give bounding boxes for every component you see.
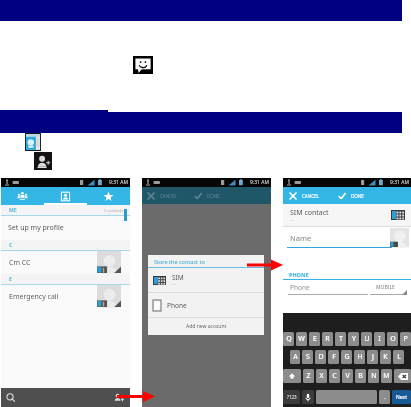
staticText: 9:31 AM bbox=[250, 179, 269, 186]
staticText: ?123 bbox=[287, 394, 297, 400]
button[interactable]: Groups bbox=[1, 187, 44, 205]
button[interactable]: Favorites bbox=[87, 187, 130, 205]
button[interactable]: M bbox=[381, 369, 392, 383]
staticText: 9:31 AM bbox=[109, 179, 128, 186]
button[interactable]: A bbox=[290, 350, 300, 364]
staticText: . bbox=[384, 393, 386, 401]
staticText: D bbox=[318, 352, 324, 362]
button[interactable]: ?123 bbox=[283, 390, 300, 404]
staticText: Set up my profile bbox=[8, 223, 64, 233]
staticText: ME bbox=[9, 207, 17, 214]
button[interactable]: S bbox=[302, 350, 313, 364]
button[interactable]: L bbox=[393, 350, 404, 364]
button[interactable]: J bbox=[367, 350, 378, 364]
button[interactable]: X bbox=[316, 369, 327, 383]
staticText: C bbox=[9, 242, 13, 249]
staticText: Phone bbox=[290, 283, 310, 292]
staticText: SIM contact bbox=[290, 208, 329, 218]
staticText: Next bbox=[396, 394, 407, 401]
staticText: Emergency call bbox=[9, 292, 59, 302]
staticText: E bbox=[9, 276, 12, 283]
button[interactable]: Shift bbox=[283, 369, 301, 383]
staticText: ···· bbox=[290, 218, 295, 223]
staticText: U bbox=[364, 334, 370, 344]
button[interactable]: Cancel bbox=[288, 191, 298, 201]
staticText: P bbox=[403, 334, 408, 344]
button[interactable]: Backspace bbox=[394, 369, 411, 383]
staticText: W bbox=[298, 334, 305, 344]
button[interactable]: Q bbox=[283, 332, 294, 346]
staticText: 9:31 AM bbox=[390, 179, 409, 186]
staticText: ···· bbox=[172, 282, 177, 287]
button[interactable]: Add contact bbox=[113, 392, 125, 404]
button[interactable]: Done bbox=[193, 191, 203, 201]
button[interactable]: Cm CC bbox=[1, 251, 130, 274]
button[interactable]: F bbox=[328, 350, 339, 364]
button[interactable]: Voice input bbox=[302, 390, 314, 404]
button[interactable]: Search bbox=[5, 392, 17, 404]
staticText: Store the contact to bbox=[154, 258, 205, 265]
staticText: I bbox=[378, 334, 381, 344]
button[interactable]: Next bbox=[392, 390, 411, 404]
button[interactable]: Contacts bbox=[44, 187, 87, 205]
button[interactable]: W bbox=[296, 332, 307, 346]
staticText: V bbox=[345, 371, 350, 381]
button[interactable]: D bbox=[315, 350, 326, 364]
staticText: Add new account bbox=[186, 323, 227, 330]
staticText: Z bbox=[306, 371, 311, 381]
staticText: Phone bbox=[167, 301, 187, 310]
staticText: DONE bbox=[207, 193, 220, 199]
staticText: B bbox=[358, 371, 363, 381]
button[interactable]: Phone bbox=[148, 293, 264, 317]
button[interactable]: Space bbox=[316, 390, 377, 404]
button[interactable]: O bbox=[387, 332, 398, 346]
button[interactable]: B bbox=[355, 369, 366, 383]
button[interactable]: Emergency call bbox=[1, 285, 130, 308]
button[interactable]: K bbox=[380, 350, 391, 364]
button[interactable]: E bbox=[309, 332, 320, 346]
staticText: 2 contacts bbox=[104, 208, 124, 213]
staticText: J bbox=[372, 352, 374, 362]
button[interactable]: Set up my profile bbox=[1, 216, 130, 240]
staticText: A bbox=[293, 352, 298, 362]
button[interactable]: U bbox=[361, 332, 372, 346]
button[interactable]: P bbox=[400, 332, 411, 346]
button[interactable]: Add new account bbox=[148, 318, 264, 335]
staticText: Y bbox=[352, 334, 356, 344]
staticText: PHONE bbox=[289, 271, 309, 278]
staticText: H bbox=[357, 352, 363, 362]
button[interactable]: Y bbox=[348, 332, 359, 346]
button[interactable]: G bbox=[341, 350, 352, 364]
button[interactable]: . bbox=[379, 390, 390, 404]
staticText: Name bbox=[290, 233, 312, 243]
staticText: N bbox=[371, 371, 377, 381]
staticText: M bbox=[383, 371, 390, 381]
staticText: R bbox=[325, 334, 330, 344]
staticText: S bbox=[306, 352, 310, 362]
button[interactable]: I bbox=[374, 332, 385, 346]
button[interactable]: T bbox=[335, 332, 346, 346]
button[interactable]: C bbox=[329, 369, 340, 383]
staticText: L bbox=[397, 352, 401, 362]
staticText: SIM bbox=[172, 273, 184, 282]
button[interactable]: Cancel bbox=[146, 191, 156, 201]
button[interactable]: Done bbox=[337, 191, 347, 201]
staticText: O bbox=[390, 334, 396, 344]
button[interactable]: H bbox=[354, 350, 365, 364]
button[interactable]: V bbox=[342, 369, 353, 383]
staticText: K bbox=[383, 352, 388, 362]
button[interactable]: R bbox=[322, 332, 333, 346]
button[interactable]: Z bbox=[303, 369, 314, 383]
button[interactable]: SIM contact bbox=[283, 204, 411, 226]
button[interactable]: N bbox=[368, 369, 379, 383]
staticText: C bbox=[332, 371, 337, 381]
staticText: F bbox=[332, 352, 336, 362]
staticText: CANCEL bbox=[160, 193, 177, 199]
staticText: DONE bbox=[351, 193, 364, 199]
staticText: Q bbox=[286, 334, 292, 344]
button[interactable]: SIM bbox=[148, 268, 264, 292]
staticText: CANCEL bbox=[302, 193, 319, 199]
staticText: T bbox=[339, 334, 343, 344]
staticText: X bbox=[319, 371, 324, 381]
staticText: E bbox=[313, 334, 317, 344]
